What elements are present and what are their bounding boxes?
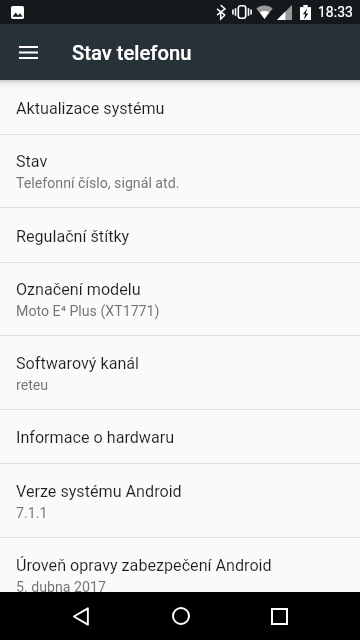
staticText: Regulační štítky [16, 227, 130, 246]
staticText: Informace o hardwaru [16, 428, 175, 447]
button[interactable]: Úroveň opravy zabezpečení Android [0, 538, 360, 612]
button[interactable]: Softwarový kanál [0, 336, 360, 409]
button[interactable]: Home [146, 592, 215, 640]
button[interactable]: Aktualizace systému [0, 80, 360, 134]
staticText: Stav telefonu [72, 41, 192, 65]
staticText: Stav [16, 152, 48, 171]
staticText: 7.1.1 [16, 505, 48, 522]
staticText: Aktualizace systému [16, 99, 165, 118]
staticText: Verze systému Android [16, 482, 182, 501]
staticText: Telefonní číslo, signál atd. [16, 175, 180, 192]
button[interactable]: Back [46, 592, 115, 640]
staticText: Softwarový kanál [16, 354, 140, 373]
button[interactable]: Regulační štítky [0, 208, 360, 262]
staticText: Moto E⁴ Plus (XT1771) [16, 303, 160, 320]
staticText: reteu [16, 377, 49, 394]
button[interactable]: Informace o hardwaru [0, 410, 360, 463]
staticText: Úroveň opravy zabezpečení Android [16, 556, 272, 575]
staticText: 18:33 [318, 4, 353, 20]
staticText: 5. dubna 2017 [16, 579, 106, 596]
button[interactable]: Verze systému Android [0, 464, 360, 537]
button[interactable]: Stav [0, 135, 360, 207]
staticText: Označení modelu [16, 280, 141, 299]
button[interactable]: Recent apps [245, 592, 314, 640]
button[interactable]: Open navigation drawer [0, 24, 56, 80]
button[interactable]: Označení modelu [0, 263, 360, 335]
